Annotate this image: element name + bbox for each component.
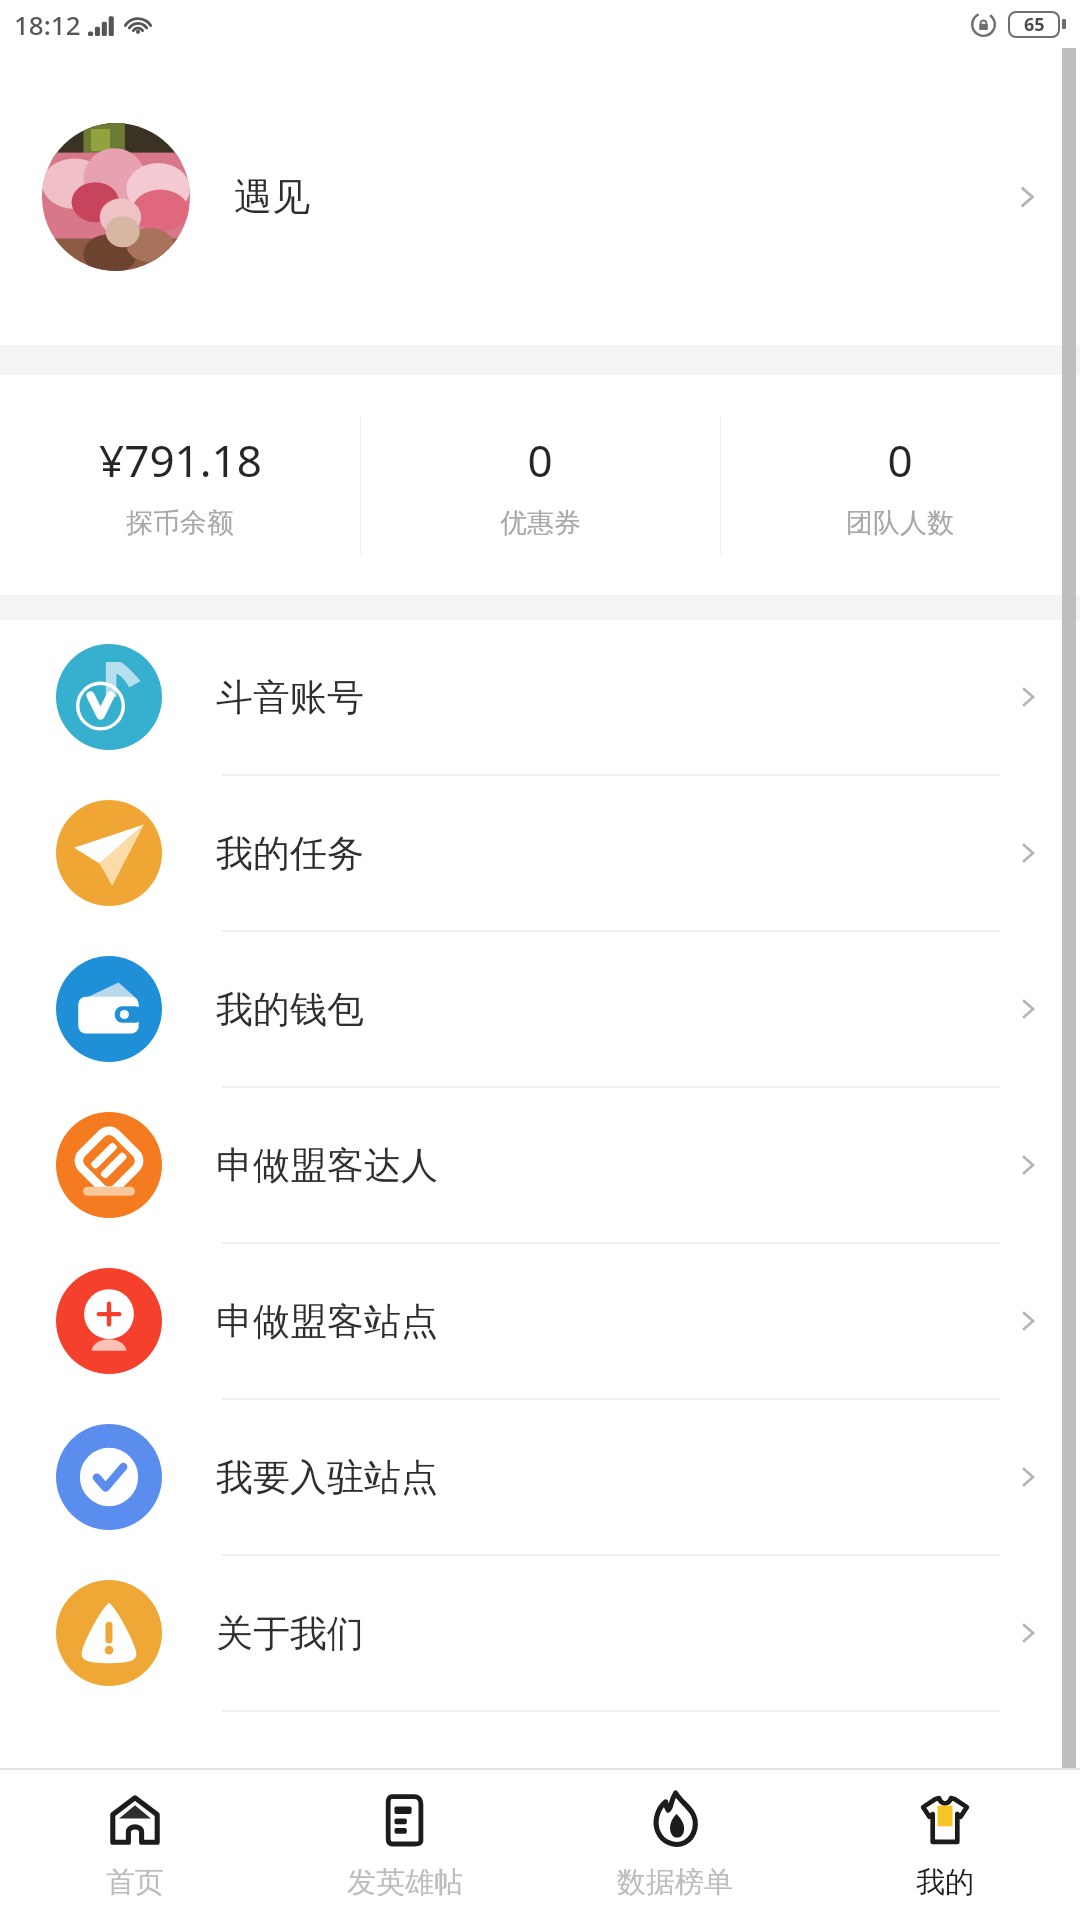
staticText: 团队人数 — [846, 506, 954, 540]
button[interactable]: 关于我们 — [0, 1556, 1080, 1712]
button[interactable]: 我要入驻站点 — [0, 1400, 1080, 1556]
other: Open profile — [1012, 182, 1042, 212]
staticText: 0 — [887, 430, 913, 490]
button[interactable]: 0 — [720, 375, 1080, 595]
staticText: 我的 — [916, 1864, 974, 1901]
button[interactable]: 我的 — [810, 1770, 1080, 1920]
button[interactable]: 我的钱包 — [0, 932, 1080, 1088]
button[interactable]: 斗音账号 — [0, 620, 1080, 776]
staticText: 65 — [1024, 12, 1045, 37]
staticText: 遇见 — [234, 173, 310, 221]
button[interactable]: 我的任务 — [0, 776, 1080, 932]
button[interactable]: 首页 — [0, 1770, 270, 1920]
staticText: 申做盟客达人 — [216, 1142, 438, 1189]
button[interactable]: 申做盟客达人 — [0, 1088, 1080, 1244]
staticText: 18:12 — [14, 7, 81, 42]
button[interactable]: 遇见 — [0, 48, 1080, 345]
staticText: 关于我们 — [216, 1610, 364, 1657]
staticText: 我的钱包 — [216, 986, 364, 1033]
staticText: 申做盟客站点 — [216, 1298, 438, 1345]
staticText: ¥791.18 — [99, 430, 262, 490]
button[interactable]: 发英雄帖 — [270, 1770, 540, 1920]
staticText: 我的任务 — [216, 830, 364, 877]
staticText: 探币余额 — [126, 506, 234, 540]
button[interactable]: 申做盟客站点 — [0, 1244, 1080, 1400]
staticText: 0 — [527, 430, 553, 490]
button[interactable]: 0 — [360, 375, 720, 595]
button[interactable]: ¥791.18 — [0, 375, 360, 595]
staticText: 首页 — [106, 1864, 164, 1901]
staticText: 数据榜单 — [617, 1864, 733, 1901]
button[interactable]: 数据榜单 — [540, 1770, 810, 1920]
staticText: 优惠券 — [500, 506, 581, 540]
staticText: 斗音账号 — [216, 674, 364, 721]
staticText: 发英雄帖 — [347, 1864, 463, 1901]
staticText: 我要入驻站点 — [216, 1454, 438, 1501]
